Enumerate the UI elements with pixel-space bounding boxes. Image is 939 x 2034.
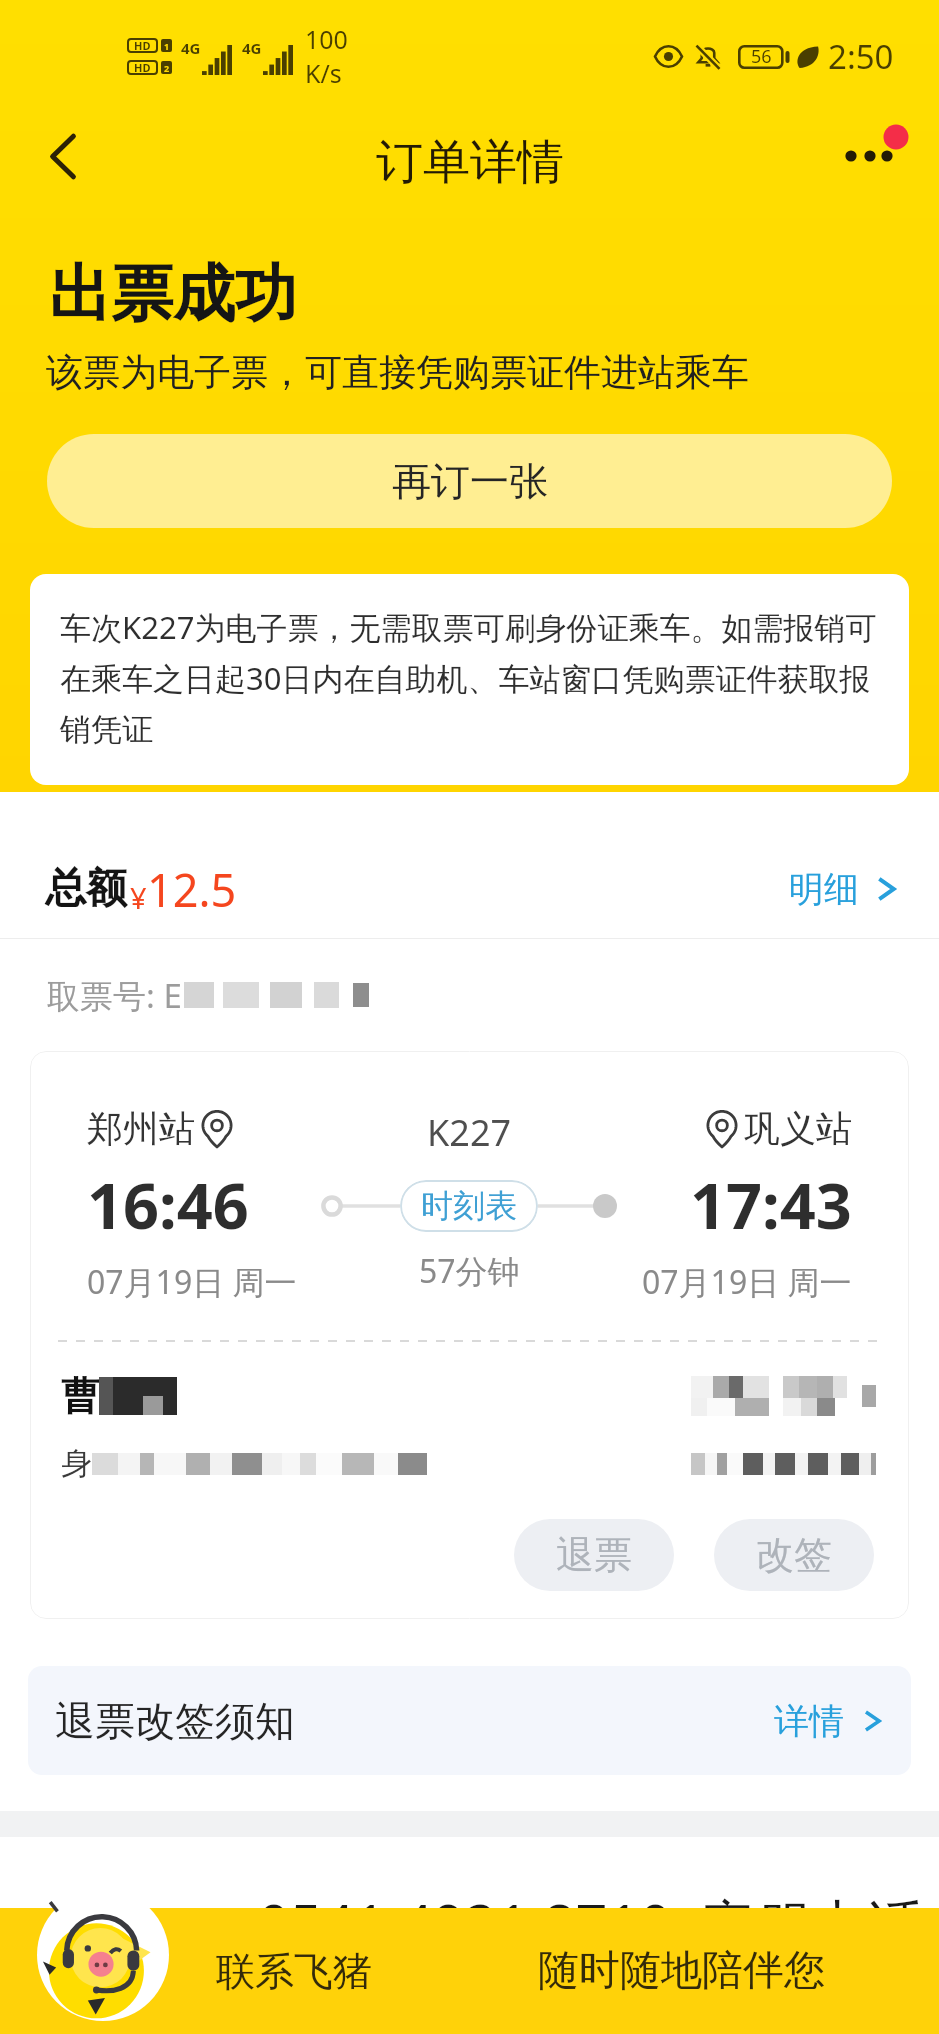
button[interactable]: 时刻表 (400, 1180, 538, 1232)
staticText: 取票号: E (47, 973, 182, 1018)
staticText: HD (134, 38, 151, 53)
button[interactable]: Contact Fliggy customer service (37, 1889, 169, 2021)
staticText: HD (134, 60, 151, 75)
staticText: 订单详情 (376, 133, 564, 192)
staticText: 56 (751, 44, 772, 69)
staticText: K/s (305, 56, 342, 90)
button[interactable]: Back (22, 121, 104, 203)
staticText: 0541 4921 8710 客服电话 (258, 1886, 925, 1962)
staticText: 详情 (774, 1699, 844, 1743)
staticText: 16:46 (87, 1162, 249, 1248)
staticText: 再订一张 (392, 457, 548, 506)
staticText: K227 (427, 1108, 512, 1157)
staticText: 随时随地陪伴您 (538, 1945, 825, 1997)
staticText: 曹 (61, 1372, 99, 1420)
staticText: 2:50 (828, 34, 894, 79)
staticText: 57分钟 (419, 1249, 520, 1293)
staticText: 1 (164, 40, 170, 52)
staticText: 该票为电子票，可直接凭购票证件进站乘车 (46, 349, 749, 396)
staticText: 车次K227为电子票，无需取票可刷身份证乘车。如需报销可在乘车之日起30日内在自… (60, 606, 879, 749)
button[interactable]: 改签 (714, 1519, 874, 1591)
staticText: 07月19日 周一 (642, 1260, 852, 1304)
staticText: 明细 (789, 867, 859, 911)
staticText: 4G (242, 38, 262, 58)
button[interactable]: 退票 (514, 1519, 674, 1591)
staticText: 郑州站 (87, 1106, 195, 1151)
staticText: 12.5 (147, 859, 237, 920)
staticText: 联系飞猪 (216, 1947, 372, 1996)
button[interactable]: 再订一张 (47, 434, 892, 528)
staticText: 出票成功 (49, 255, 297, 333)
staticText: 2 (164, 62, 170, 74)
button[interactable]: 退票改签须知 (28, 1666, 911, 1775)
button[interactable]: More options (821, 120, 931, 204)
staticText: 17:43 (690, 1162, 852, 1248)
staticText: 总额 (45, 863, 127, 915)
staticText: ¥ (130, 878, 147, 917)
staticText: 100 (305, 22, 348, 56)
staticText: 07月19日 周一 (87, 1260, 297, 1304)
staticText: 改签 (756, 1531, 832, 1579)
staticText: 4G (181, 38, 201, 58)
staticText: 时刻表 (421, 1186, 517, 1226)
button[interactable]: 联系飞猪 (0, 1908, 939, 2034)
button[interactable]: 总额 (0, 792, 939, 938)
staticText: 退票 (556, 1531, 632, 1579)
staticText: 巩义站 (744, 1106, 852, 1151)
staticText: 身 (61, 1444, 92, 1483)
staticText: 退票改签须知 (55, 1696, 295, 1746)
